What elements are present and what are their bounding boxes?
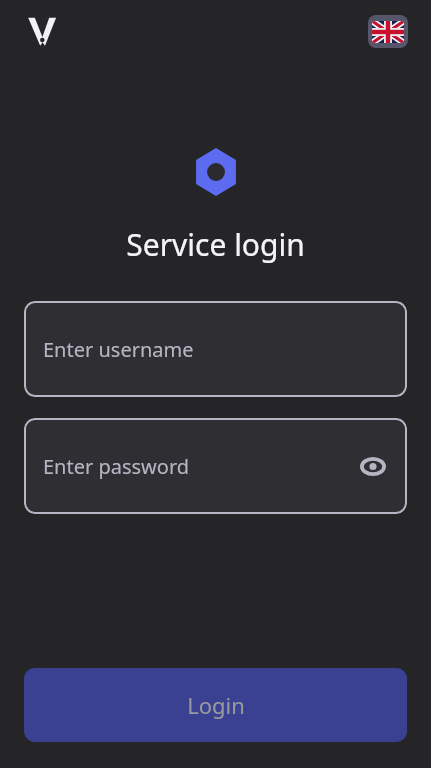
button[interactable]: Enter username	[24, 301, 407, 397]
staticText: Service login	[126, 224, 305, 265]
button[interactable]: Login	[24, 668, 407, 742]
button[interactable]: Show password	[358, 451, 388, 481]
staticText: Enter username	[43, 336, 194, 363]
button[interactable]: Logo	[24, 13, 60, 49]
button[interactable]: Language: English	[368, 15, 408, 48]
staticText: Login	[187, 690, 245, 720]
staticText: Enter password	[43, 453, 190, 480]
button[interactable]: Enter password	[24, 418, 407, 514]
